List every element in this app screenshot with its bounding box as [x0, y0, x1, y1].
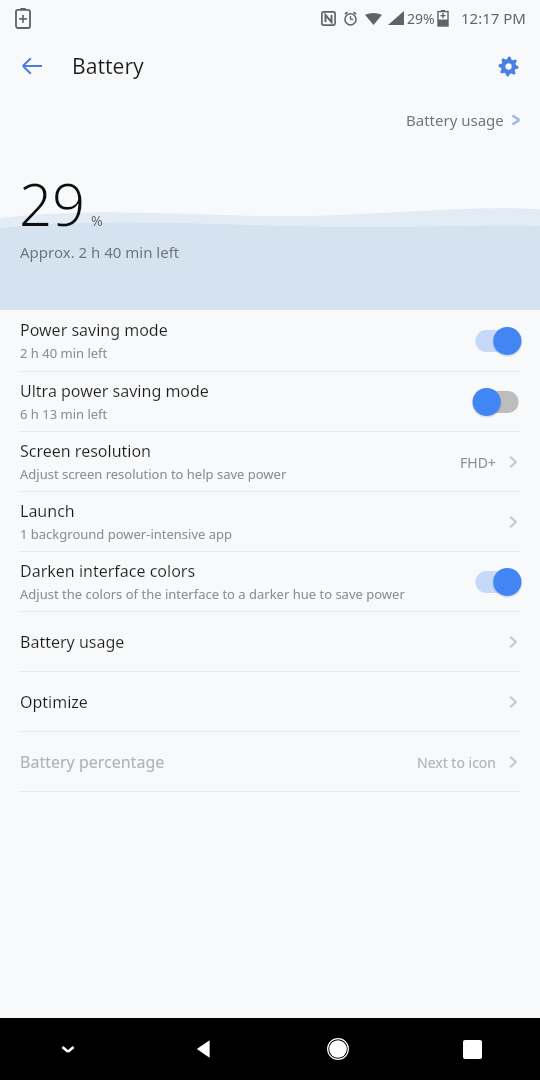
staticText: Battery usage: [406, 110, 504, 130]
staticText: 12:17 PM: [461, 8, 526, 28]
button[interactable]: Darken interface colors: [0, 552, 540, 611]
staticText: Ultra power saving mode: [20, 380, 209, 402]
button[interactable]: Power saving mode: [0, 310, 540, 371]
staticText: Darken interface colors: [20, 560, 196, 582]
button[interactable]: On: [470, 326, 524, 356]
staticText: 6 h 13 min left: [20, 405, 108, 423]
staticText: 2 h 40 min left: [20, 344, 108, 362]
staticText: Next to icon: [417, 753, 496, 772]
button[interactable]: Battery usage: [0, 612, 540, 671]
staticText: 29: [19, 164, 86, 243]
staticText: Battery: [72, 52, 144, 81]
button[interactable]: Off: [470, 387, 524, 417]
staticText: Adjust the colors of the interface to a …: [20, 585, 405, 603]
staticText: Launch: [20, 500, 75, 522]
button[interactable]: Optimize: [0, 672, 540, 731]
button[interactable]: Back: [8, 42, 56, 90]
button[interactable]: Screen resolution: [0, 432, 540, 491]
button[interactable]: On: [470, 567, 524, 597]
staticText: 29%: [407, 9, 435, 28]
staticText: Screen resolution: [20, 440, 151, 462]
button[interactable]: Settings: [486, 44, 530, 88]
button[interactable]: Battery usage: [400, 104, 528, 136]
button[interactable]: Back: [135, 1018, 270, 1080]
button[interactable]: Home: [270, 1018, 405, 1080]
staticText: 1 background power-intensive app: [20, 525, 233, 543]
staticText: Approx. 2 h 40 min left: [20, 242, 180, 262]
staticText: Optimize: [20, 691, 88, 713]
button[interactable]: Battery percentage: [0, 732, 540, 791]
button[interactable]: Ultra power saving mode: [0, 372, 540, 431]
staticText: %: [91, 211, 103, 230]
staticText: Power saving mode: [20, 319, 168, 341]
staticText: Battery usage: [20, 631, 125, 653]
button[interactable]: Recent apps: [405, 1018, 540, 1080]
staticText: Battery percentage: [20, 751, 165, 773]
button[interactable]: Launch: [0, 492, 540, 551]
staticText: Adjust screen resolution to help save po…: [20, 465, 287, 483]
button[interactable]: Hide navigation bar: [0, 1018, 135, 1080]
staticText: FHD+: [460, 453, 496, 472]
